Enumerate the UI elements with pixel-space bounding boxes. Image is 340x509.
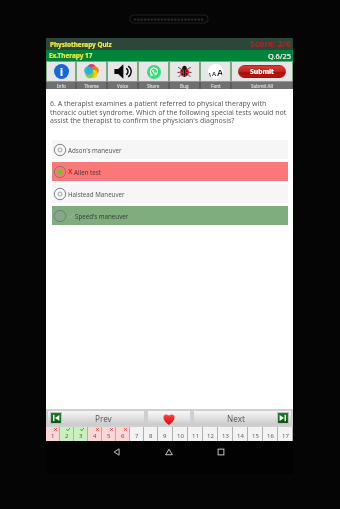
button[interactable]: 4 xyxy=(88,427,101,441)
other: Report a bug xyxy=(178,65,191,78)
button[interactable]: 11 xyxy=(188,427,202,441)
button[interactable]: Info xyxy=(47,82,75,89)
staticText: Submit xyxy=(250,67,275,76)
staticText: 16 xyxy=(267,432,274,440)
staticText: 7 xyxy=(135,432,139,440)
button[interactable]: Home xyxy=(158,441,180,463)
button[interactable]: Font size xyxy=(201,62,230,81)
button[interactable]: Back xyxy=(106,441,128,463)
button[interactable]: Voice xyxy=(108,62,137,81)
staticText: 5 xyxy=(107,432,111,440)
staticText: A xyxy=(208,72,212,78)
staticText: 2 xyxy=(65,432,69,440)
button[interactable]: Theme xyxy=(77,82,106,89)
button[interactable]: 9 xyxy=(158,427,172,441)
staticText: 6. A therapist examines a patient referr… xyxy=(50,99,290,125)
button[interactable]: 14 xyxy=(233,427,247,441)
staticText: Submit All xyxy=(251,83,273,89)
staticText: Voice xyxy=(117,83,129,89)
button[interactable]: 10 xyxy=(173,427,187,441)
staticText: Score: 2/6 xyxy=(250,38,291,50)
button[interactable]: Recent apps xyxy=(210,441,232,463)
button[interactable]: Submit All xyxy=(232,82,292,89)
staticText: Bug xyxy=(180,83,189,89)
staticText: A xyxy=(212,70,217,78)
other: Theme xyxy=(84,64,99,79)
button[interactable]: Share on WhatsApp xyxy=(139,62,168,81)
staticText: 14 xyxy=(237,432,244,440)
staticText: Speed's maneuver xyxy=(75,212,129,220)
staticText: 11 xyxy=(192,432,199,440)
button[interactable]: 12 xyxy=(203,427,217,441)
staticText: Prev xyxy=(95,413,112,424)
button[interactable]: 17 xyxy=(278,427,292,441)
staticText: Physiotherapy Quiz xyxy=(50,40,112,49)
staticText: 6 xyxy=(121,432,125,440)
button[interactable]: Info xyxy=(47,62,75,81)
button[interactable]: 5 xyxy=(102,427,115,441)
other: Share on WhatsApp xyxy=(147,65,161,79)
staticText: Halstead Maneuver xyxy=(68,190,125,198)
staticText: Share xyxy=(147,83,160,89)
button[interactable]: Submit xyxy=(232,62,292,81)
staticText: Info xyxy=(57,83,66,89)
button[interactable]: Report a bug xyxy=(170,62,199,81)
staticText: Theme xyxy=(84,83,99,89)
staticText: 17 xyxy=(282,432,289,440)
button[interactable]: Font xyxy=(201,82,230,89)
staticText: Q.6/25 xyxy=(268,51,291,61)
staticText: A xyxy=(217,66,223,78)
staticText: Allen test xyxy=(74,168,101,176)
other: Info xyxy=(54,64,69,79)
button[interactable]: 8 xyxy=(144,427,157,441)
button[interactable]: Adson's maneuver xyxy=(52,140,288,159)
staticText: 10 xyxy=(177,432,184,440)
staticText: 13 xyxy=(222,432,229,440)
button[interactable]: 2 xyxy=(60,427,73,441)
button[interactable]: 16 xyxy=(263,427,277,441)
staticText: 9 xyxy=(163,432,167,440)
staticText: Next xyxy=(227,413,245,424)
staticText: 1 xyxy=(51,432,55,440)
button[interactable]: Speed's maneuver xyxy=(52,206,288,225)
staticText: X xyxy=(68,167,73,176)
button[interactable]: 13 xyxy=(218,427,232,441)
button[interactable]: Share xyxy=(139,82,168,89)
button[interactable]: 3 xyxy=(74,427,87,441)
staticText: 12 xyxy=(207,432,214,440)
button[interactable]: Voice xyxy=(108,82,137,89)
button[interactable]: Theme xyxy=(77,62,106,81)
button[interactable]: 7 xyxy=(130,427,143,441)
staticText: Font xyxy=(211,83,221,89)
staticText: Ex.Therapy 17 xyxy=(49,51,93,60)
staticText: 3 xyxy=(79,432,83,440)
button[interactable]: Next xyxy=(194,411,291,425)
other: Last question xyxy=(277,412,289,424)
staticText: i xyxy=(60,65,63,79)
staticText: 15 xyxy=(252,432,259,440)
button[interactable]: 6 xyxy=(116,427,129,441)
staticText: 4 xyxy=(93,432,97,440)
other: First question xyxy=(50,412,62,424)
staticText: 8 xyxy=(149,432,153,440)
button[interactable]: Halstead Maneuver xyxy=(52,184,288,203)
button[interactable]: 1 xyxy=(46,427,59,441)
other: Voice xyxy=(114,64,132,79)
other: Font size xyxy=(208,64,223,79)
button[interactable]: Bug xyxy=(170,82,199,89)
button[interactable]: X xyxy=(52,162,288,181)
button[interactable]: First question xyxy=(48,411,144,425)
button[interactable]: 15 xyxy=(248,427,262,441)
staticText: Adson's maneuver xyxy=(68,146,122,154)
button[interactable]: Favourite xyxy=(148,411,190,425)
